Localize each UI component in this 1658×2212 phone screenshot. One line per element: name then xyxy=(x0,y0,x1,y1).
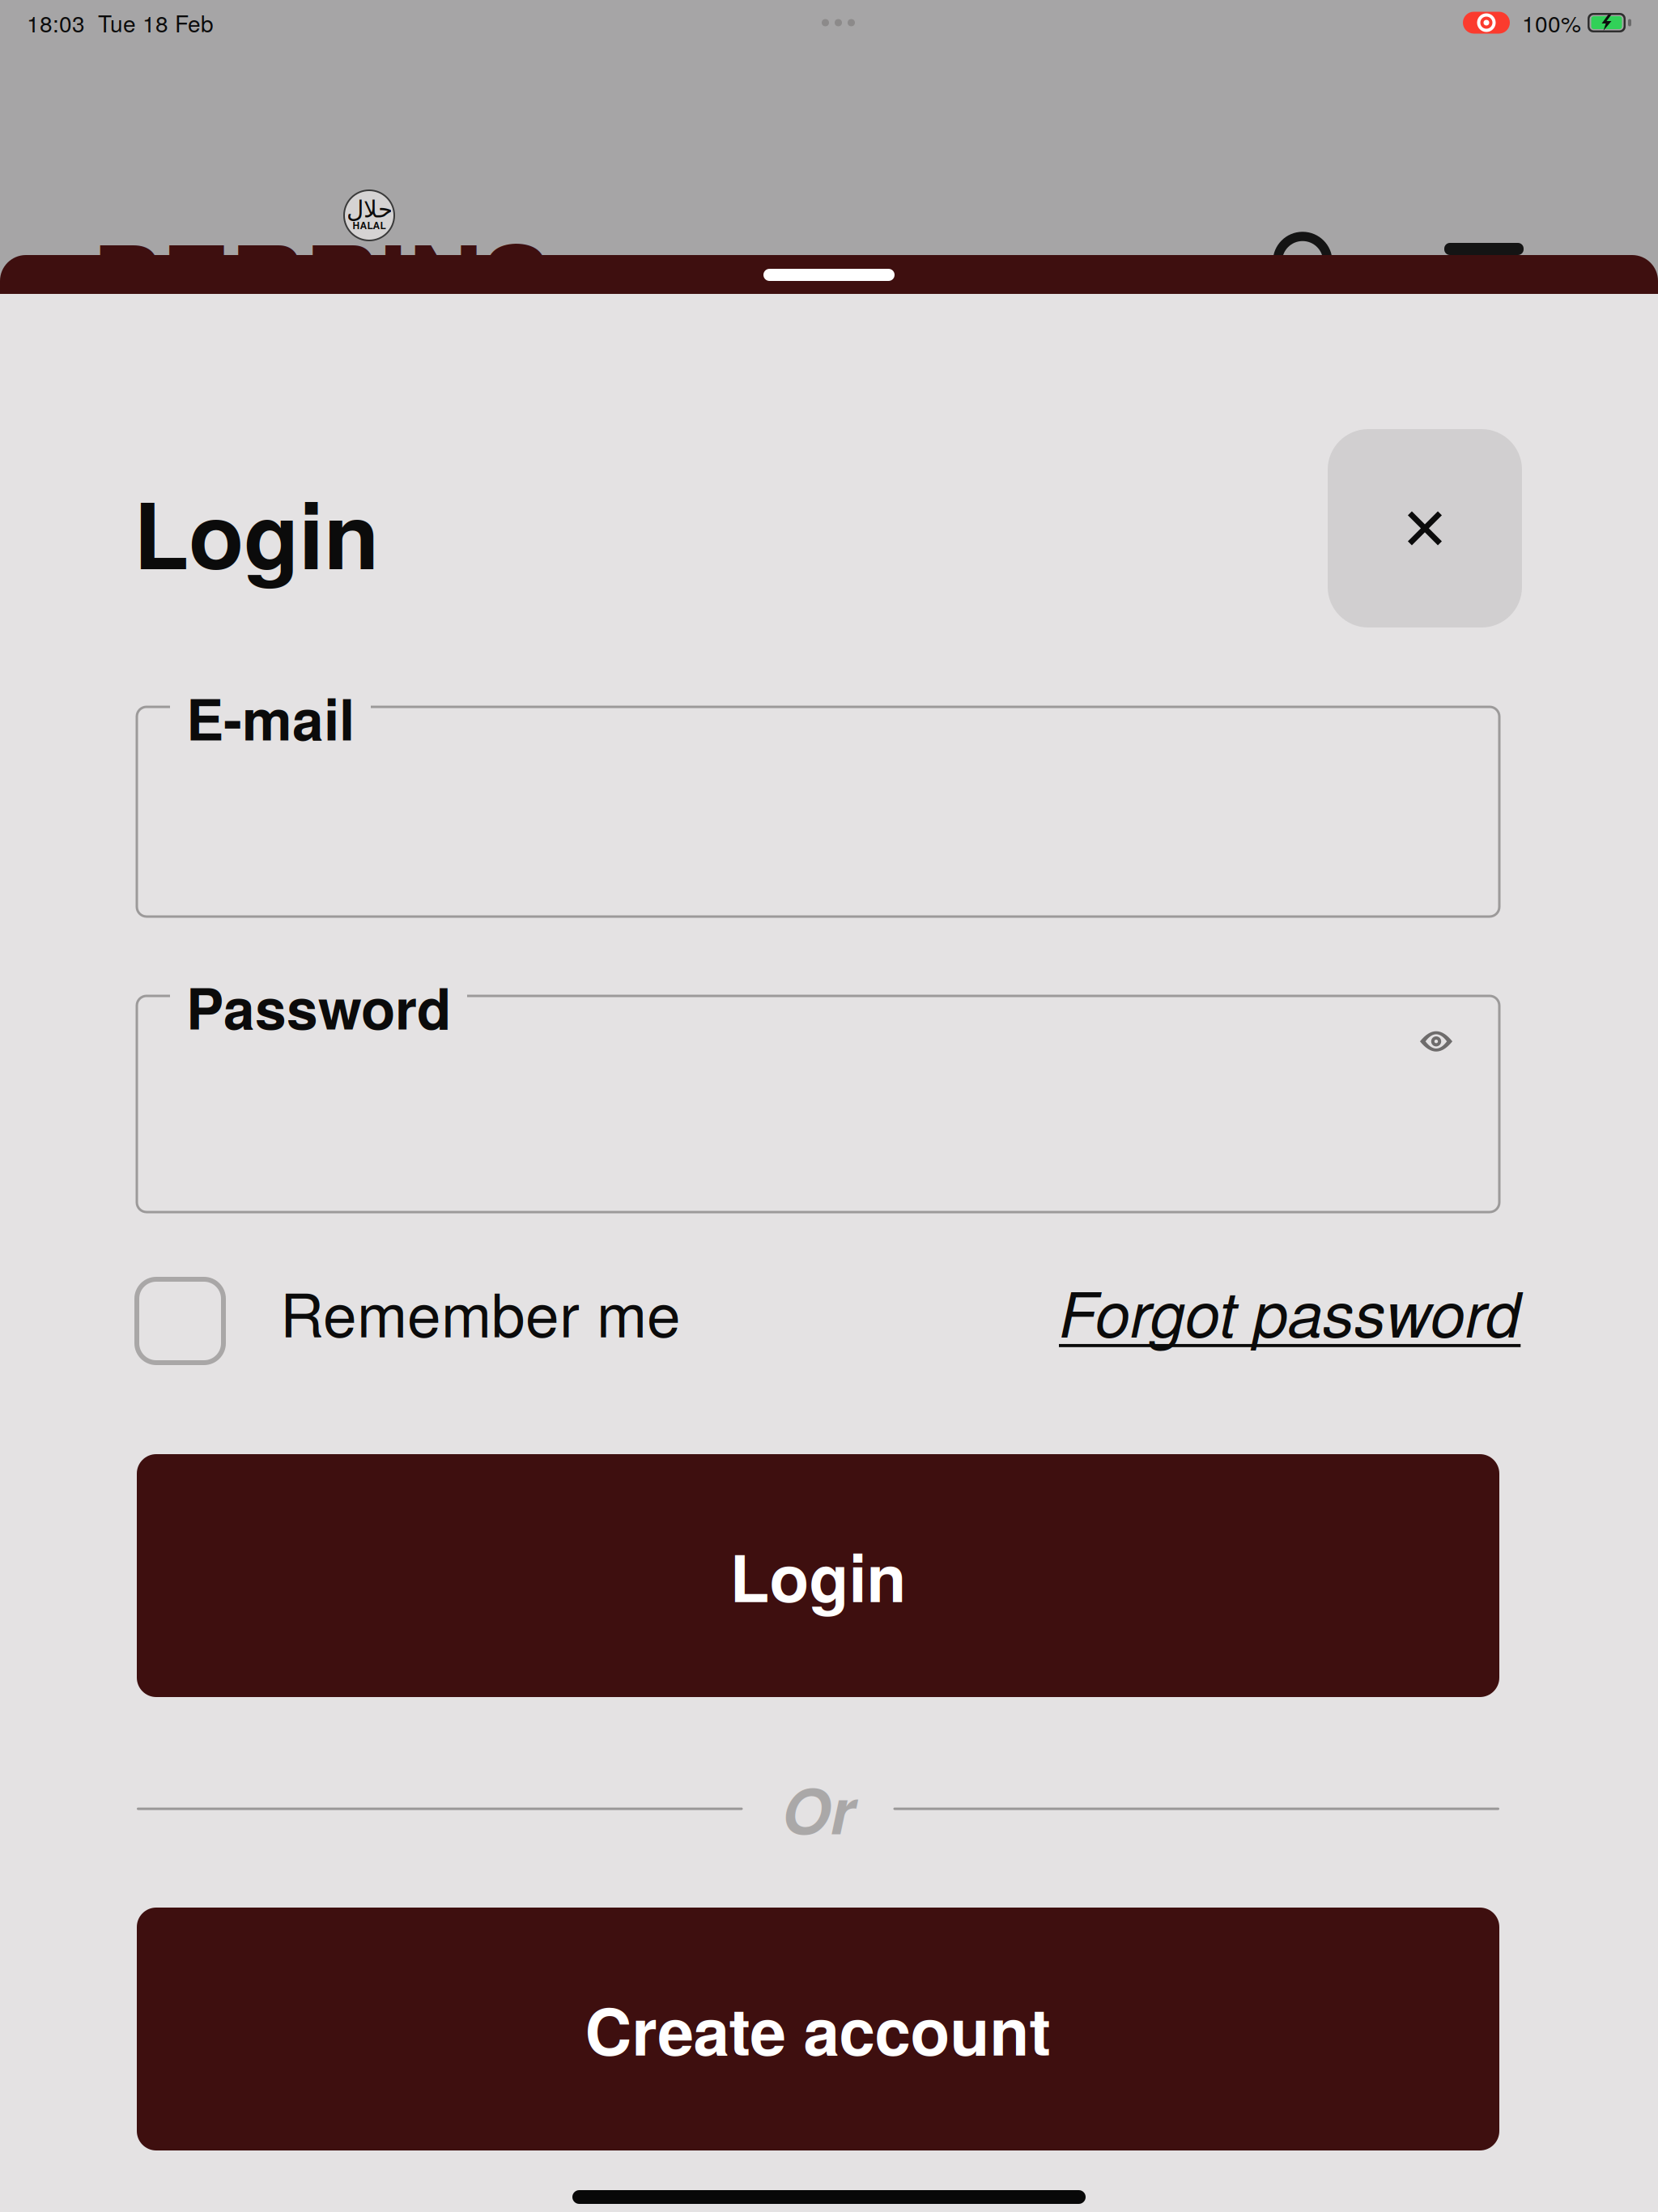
staticText: Login xyxy=(730,1529,906,1622)
staticText: Or xyxy=(782,1764,855,1854)
button[interactable]: Login xyxy=(137,1454,1499,1697)
staticText: E-mail xyxy=(186,677,355,758)
button[interactable]: Remember me xyxy=(137,1268,681,1354)
staticText: 18:03 xyxy=(27,6,85,39)
staticText: Create account xyxy=(585,1983,1051,2075)
button[interactable]: Close xyxy=(1328,429,1522,627)
staticText: HALAL xyxy=(353,218,386,232)
button[interactable]: Create account xyxy=(137,1908,1499,2150)
staticText: حلال xyxy=(346,195,392,223)
staticText: Password xyxy=(186,966,451,1047)
staticText: 100% xyxy=(1522,6,1581,39)
button[interactable]: Forgot password xyxy=(1059,1267,1520,1355)
staticText: Forgot password xyxy=(1059,1267,1520,1355)
staticText: PERRINS xyxy=(92,204,551,352)
staticText: Login xyxy=(134,467,379,597)
staticText: Remember me xyxy=(280,1268,681,1354)
staticText: Tue 18 Feb xyxy=(98,6,214,39)
button[interactable]: Show password xyxy=(1389,1005,1483,1078)
